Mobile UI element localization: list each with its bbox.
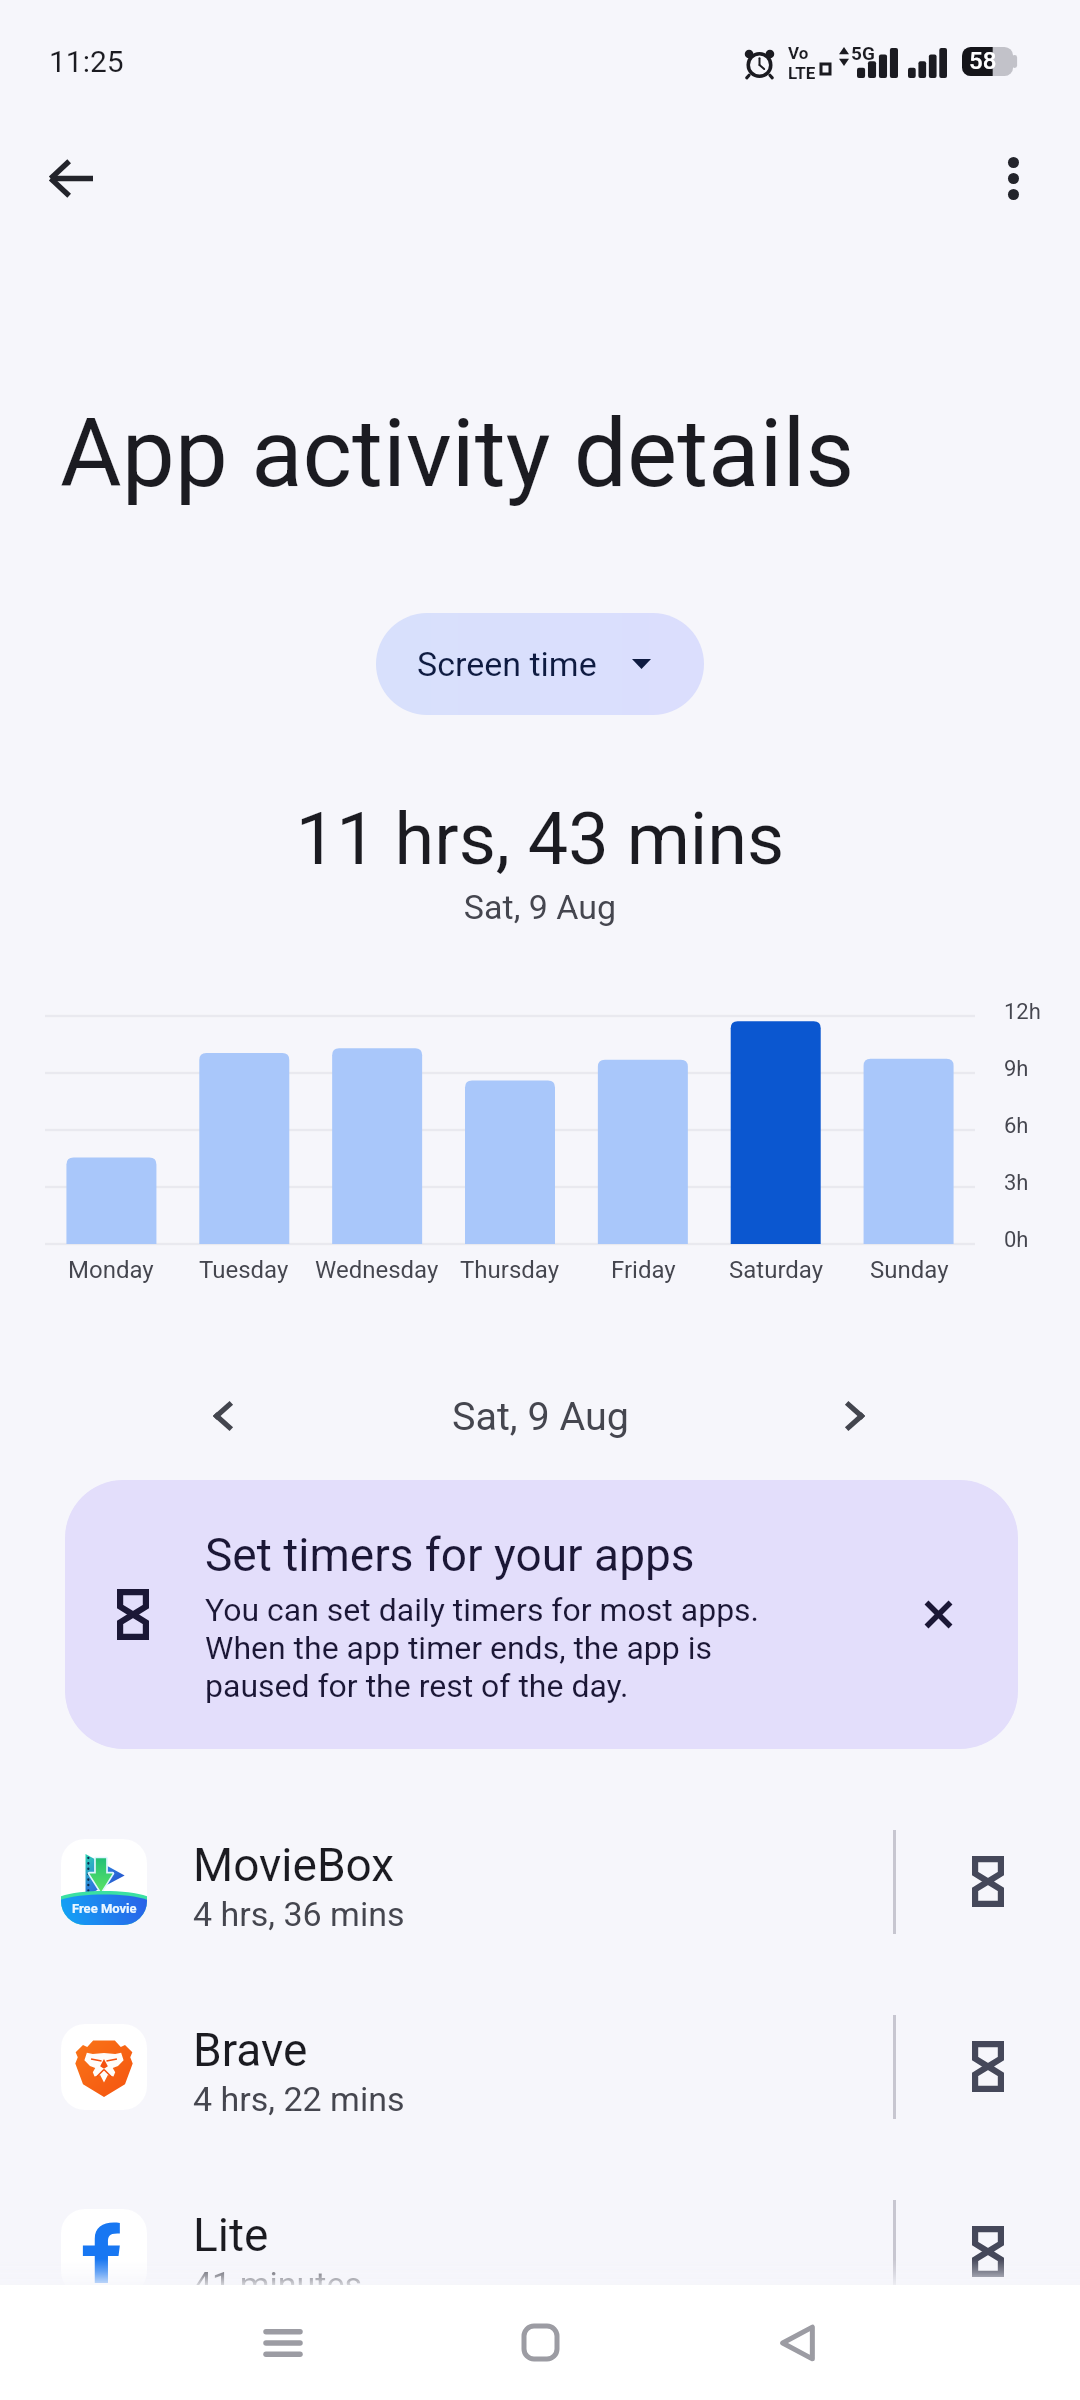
- staticText: Sat, 9 Aug: [0, 887, 1080, 927]
- staticText: 4 hrs, 22 mins: [193, 2079, 405, 2119]
- staticText: Brave: [193, 2023, 308, 2077]
- staticText: 41 minutes: [193, 2264, 362, 2304]
- button[interactable]: Set app timer for Brave: [942, 2020, 1034, 2112]
- staticText: 12h: [1004, 999, 1041, 1025]
- staticText: Sat, 9 Aug: [452, 1393, 629, 1439]
- button[interactable]: Next day: [810, 1371, 900, 1461]
- button[interactable]: Recent apps: [154, 2285, 412, 2400]
- button[interactable]: Lite: [0, 2159, 1080, 2344]
- staticText: 11 hrs, 43 mins: [0, 797, 1080, 881]
- staticText: Free Movie: [72, 1901, 137, 1916]
- staticText: 0h: [1004, 1227, 1029, 1253]
- staticText: Set timers for your apps: [205, 1528, 695, 1582]
- button[interactable]: Free Movie: [0, 1789, 1080, 1974]
- staticText: Lite: [193, 2208, 269, 2262]
- button[interactable]: Previous day: [178, 1371, 268, 1461]
- staticText: Thursday: [460, 1256, 560, 1284]
- button[interactable]: Back: [669, 2285, 926, 2400]
- staticText: 4 hrs, 36 mins: [193, 1894, 405, 1934]
- staticText: 58: [969, 47, 997, 75]
- button[interactable]: Home: [412, 2285, 669, 2400]
- staticText: Vo: [788, 43, 809, 63]
- button[interactable]: More options: [958, 123, 1068, 233]
- staticText: Wednesday: [315, 1256, 439, 1284]
- button[interactable]: Back: [15, 123, 125, 233]
- staticText: 3h: [1004, 1170, 1029, 1196]
- staticText: 5G: [851, 42, 875, 64]
- button[interactable]: Screen time: [376, 613, 704, 715]
- button[interactable]: Dismiss: [893, 1569, 983, 1659]
- staticText: Friday: [611, 1256, 676, 1284]
- button[interactable]: Set app timer for Lite: [942, 2205, 1034, 2297]
- staticText: Tuesday: [199, 1256, 289, 1284]
- staticText: Saturday: [729, 1256, 824, 1284]
- button[interactable]: Brave: [0, 1974, 1080, 2159]
- staticText: Sunday: [870, 1256, 949, 1284]
- button[interactable]: Set timers for your apps: [65, 1480, 1018, 1749]
- staticText: App activity details: [60, 398, 855, 509]
- staticText: 11:25: [49, 44, 124, 79]
- staticText: MovieBox: [193, 1838, 395, 1892]
- staticText: You can set daily timers for most apps. …: [205, 1591, 760, 1705]
- staticText: 6h: [1004, 1113, 1029, 1139]
- staticText: Monday: [68, 1256, 154, 1284]
- staticText: Screen time: [417, 644, 597, 684]
- staticText: LTE: [788, 63, 816, 83]
- staticText: 9h: [1004, 1056, 1029, 1082]
- button[interactable]: Set app timer for MovieBox: [942, 1835, 1034, 1927]
